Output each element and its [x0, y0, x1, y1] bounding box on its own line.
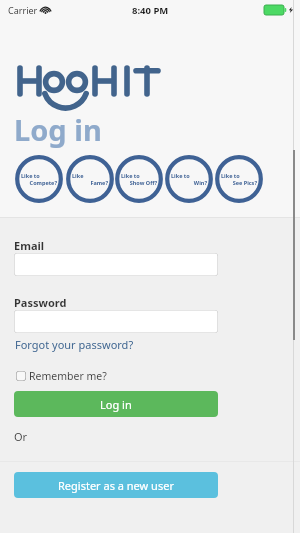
staticText: Register as a new user [58, 478, 174, 493]
button[interactable]: Like to [165, 155, 213, 203]
button[interactable]: Like to [115, 155, 163, 203]
button[interactable]: Log in [14, 391, 218, 417]
button[interactable]: Remember me? [14, 367, 109, 385]
staticText: Show Off? [121, 179, 157, 186]
button[interactable]: Like to [15, 155, 63, 203]
staticText: Password [14, 295, 67, 310]
staticText: Remember me? [29, 369, 107, 383]
staticText: Or [14, 429, 28, 444]
staticText: Like to [121, 172, 140, 179]
button[interactable]: Text input [14, 310, 218, 333]
staticText: Email [14, 238, 45, 253]
staticText: Log in [100, 397, 132, 412]
staticText: 8:40 PM [132, 4, 169, 17]
staticText: Compete? [21, 179, 57, 186]
staticText: Like to [221, 172, 240, 179]
staticText: Like to [171, 172, 190, 179]
staticText: Log in [14, 110, 102, 149]
staticText: Fame? [72, 179, 108, 186]
button[interactable]: Like [66, 155, 114, 203]
button[interactable]: Like to [215, 155, 263, 203]
staticText: Like to [21, 172, 40, 179]
staticText: Carrier [8, 4, 38, 16]
staticText: Win? [171, 179, 207, 186]
button[interactable]: Text input [14, 253, 218, 276]
button[interactable]: Forgot your password? [14, 336, 135, 353]
staticText: See Pics? [221, 179, 257, 186]
staticText: Like [72, 172, 84, 179]
staticText: Forgot your password? [15, 337, 134, 352]
button[interactable]: Register as a new user [14, 472, 218, 498]
